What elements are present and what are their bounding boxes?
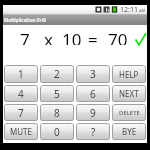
button[interactable]: 4 (4, 85, 38, 102)
staticText: 7 (20, 28, 30, 45)
staticText: 4 (18, 87, 24, 101)
button[interactable]: 7 (4, 104, 38, 121)
staticText: 12:11 (120, 5, 138, 14)
button[interactable]: 0 (40, 123, 74, 140)
button[interactable]: 3 (76, 65, 110, 83)
staticText: Multiplication Drill (4, 17, 46, 23)
button[interactable]: 1 (4, 65, 38, 83)
staticText: 9 (90, 106, 96, 120)
button[interactable]: ? (76, 123, 110, 140)
staticText: 5 (54, 87, 60, 101)
staticText: AM (139, 8, 146, 13)
staticText: 10 (62, 28, 82, 45)
button[interactable]: 8 (40, 104, 74, 121)
staticText: 3 (90, 67, 96, 81)
button[interactable]: 9 (76, 104, 110, 121)
button[interactable]: BYE (112, 123, 146, 140)
staticText: 2 (54, 67, 60, 81)
button[interactable]: 5 (40, 85, 74, 102)
staticText: NEXT (119, 88, 139, 99)
staticText: ? (91, 125, 96, 139)
staticText: 8 (54, 106, 60, 120)
button[interactable]: HELP (112, 65, 146, 83)
staticText: DELETE (119, 109, 140, 117)
button[interactable]: 6 (76, 85, 110, 102)
button[interactable]: NEXT (112, 85, 146, 102)
staticText: 1 (18, 67, 24, 81)
staticText: 0 (54, 125, 60, 139)
staticText: BYE (122, 126, 137, 137)
button[interactable]: 2 (40, 65, 74, 83)
staticText: x (44, 28, 53, 45)
button[interactable]: DELETE (112, 104, 146, 121)
staticText: = (88, 28, 98, 45)
staticText: 70 (108, 28, 128, 45)
staticText: 7 (18, 106, 24, 120)
staticText: HELP (119, 69, 139, 80)
staticText: 6 (90, 87, 96, 101)
button[interactable]: MUTE (4, 123, 38, 140)
staticText: MUTE (10, 126, 32, 137)
